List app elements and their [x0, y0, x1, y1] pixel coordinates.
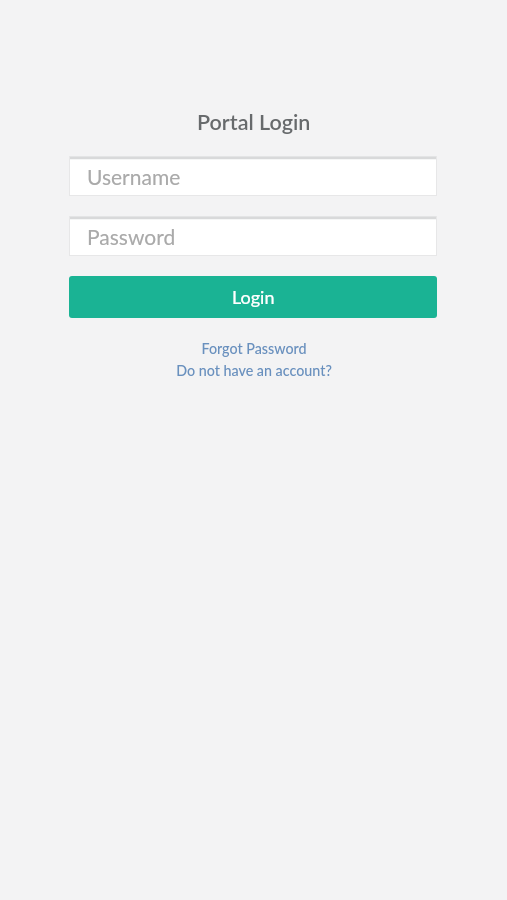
staticText: Username	[87, 164, 181, 189]
staticText: Do not have an account?	[176, 362, 332, 379]
staticText: Portal Login	[197, 109, 311, 135]
button[interactable]: Forgot Password	[193, 338, 315, 359]
button[interactable]: Username	[69, 156, 437, 196]
staticText: Forgot Password	[201, 340, 307, 357]
staticText: Password	[87, 224, 176, 249]
button[interactable]: Password	[69, 216, 437, 256]
staticText: Login	[232, 286, 275, 308]
button[interactable]: Do not have an account?	[168, 360, 340, 381]
button[interactable]: Login	[69, 276, 437, 318]
